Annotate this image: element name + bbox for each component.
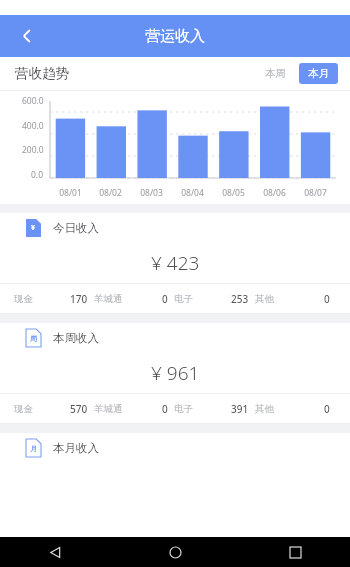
staticText: 本周 [265, 67, 286, 80]
staticText: 08/05 [222, 187, 245, 199]
staticText: 羊城通 [94, 293, 123, 305]
staticText: 0 [162, 292, 168, 306]
button[interactable]: 周 [0, 323, 350, 424]
button[interactable]: Back [40, 537, 70, 567]
button[interactable]: 本月 [299, 63, 338, 84]
staticText: 08/03 [140, 187, 163, 199]
staticText: ¥ [31, 223, 36, 233]
staticText: 400.0 [22, 120, 44, 132]
staticText: 08/02 [99, 187, 122, 199]
staticText: 现金 [14, 403, 33, 415]
staticText: 营收趋势 [15, 65, 69, 82]
button[interactable]: Recent apps [280, 537, 310, 567]
staticText: 其他 [255, 293, 274, 305]
button[interactable]: 本周 [259, 63, 292, 84]
staticText: 0 [324, 402, 330, 416]
button[interactable]: Back [8, 17, 46, 55]
staticText: 253 [231, 292, 249, 306]
staticText: 周 [30, 334, 37, 343]
staticText: 现金 [14, 293, 33, 305]
staticText: ¥ 423 [151, 250, 200, 276]
staticText: 391 [231, 402, 249, 416]
staticText: 08/07 [304, 187, 327, 199]
staticText: 其他 [255, 403, 274, 415]
staticText: 08/01 [59, 187, 82, 199]
staticText: ¥ 961 [151, 360, 200, 386]
button[interactable]: Home [160, 537, 190, 567]
staticText: 本月 [308, 67, 329, 80]
staticText: 本月收入 [53, 441, 99, 455]
staticText: 170 [70, 292, 88, 306]
staticText: 0 [162, 402, 168, 416]
staticText: 电子 [174, 403, 193, 415]
staticText: 600.0 [22, 95, 44, 107]
staticText: 570 [70, 402, 88, 416]
staticText: 0.0 [31, 169, 44, 181]
staticText: 本周收入 [53, 331, 99, 345]
button[interactable]: ¥ [0, 213, 350, 314]
staticText: 08/04 [181, 187, 204, 199]
staticText: 0 [324, 292, 330, 306]
staticText: 羊城通 [94, 403, 123, 415]
staticText: 电子 [174, 293, 193, 305]
staticText: 200.0 [22, 144, 44, 156]
staticText: 08/06 [263, 187, 286, 199]
button[interactable]: 月 [26, 433, 350, 463]
staticText: 今日收入 [53, 221, 99, 235]
staticText: 营运收入 [145, 27, 205, 46]
staticText: 月 [30, 444, 37, 453]
